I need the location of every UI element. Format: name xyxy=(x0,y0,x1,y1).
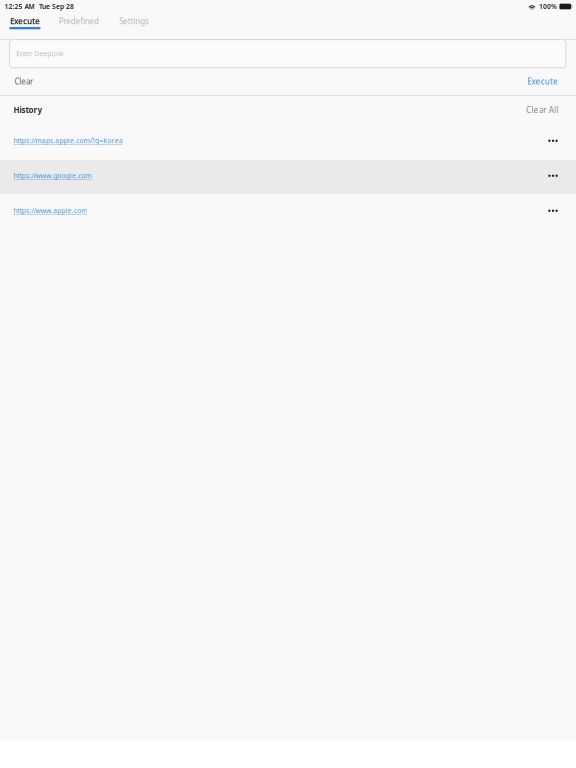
staticText: Clear All xyxy=(526,105,558,115)
button[interactable]: Clear All xyxy=(522,100,562,120)
staticText: 12:25 AM xyxy=(5,2,35,11)
staticText: Clear xyxy=(14,76,33,87)
button[interactable]: More options xyxy=(538,125,568,157)
staticText: 100% xyxy=(539,2,557,11)
button[interactable]: More options xyxy=(538,195,568,227)
staticText: Enter DeepLink xyxy=(16,49,64,58)
button[interactable]: Predefined xyxy=(58,10,99,42)
button[interactable]: https://www.apple.com xyxy=(0,194,576,229)
staticText: https://maps.apple.com/?q=Korea xyxy=(13,136,123,145)
staticText: Settings xyxy=(119,16,149,26)
button[interactable]: https://maps.apple.com/?q=Korea xyxy=(0,124,576,159)
button[interactable]: Execute xyxy=(9,10,40,42)
button[interactable]: Settings xyxy=(119,10,150,42)
staticText: History xyxy=(13,105,42,115)
staticText: Execute xyxy=(10,16,40,26)
button[interactable]: More options xyxy=(538,160,568,192)
staticText: Tue Sep 28 xyxy=(39,2,74,11)
staticText: Execute xyxy=(527,76,558,87)
staticText: https://www.google.com xyxy=(13,171,92,180)
staticText: https://www.apple.com xyxy=(13,206,87,215)
button[interactable]: Execute xyxy=(522,70,563,93)
button[interactable]: https://www.google.com xyxy=(0,159,576,194)
staticText: Predefined xyxy=(59,16,99,26)
button[interactable]: Clear xyxy=(9,70,38,93)
